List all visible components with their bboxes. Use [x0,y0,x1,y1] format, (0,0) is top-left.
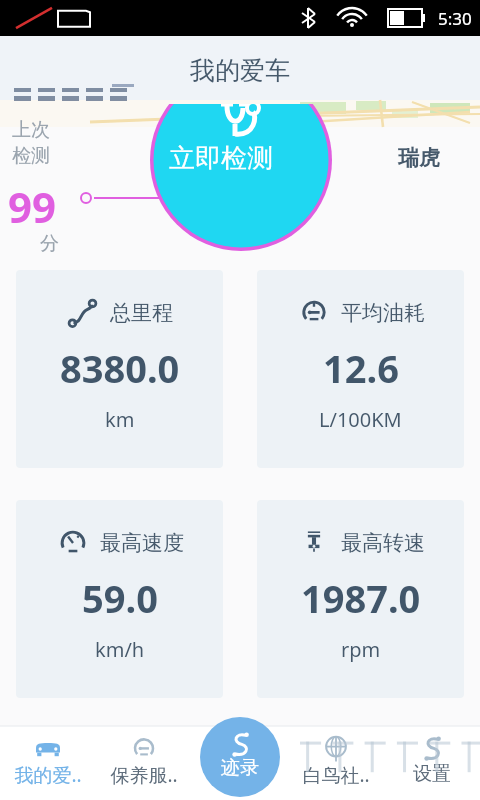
staticText: 最高速度 [100,530,184,556]
staticText: 平均油耗 [341,300,425,326]
staticText: 分 [40,232,59,256]
staticText: 12.6 [323,342,399,394]
button[interactable]: 我的爱.. [0,726,96,800]
staticText: 99 [8,178,57,235]
staticText: 保养服.. [110,762,178,788]
staticText: 我的爱.. [14,762,82,788]
staticText: L/100KM [319,406,402,433]
staticText: 白鸟社.. [302,762,370,788]
staticText: 最高转速 [341,530,425,556]
staticText: 59.0 [82,572,158,624]
button[interactable]: 平均油耗 [257,270,464,468]
button[interactable]: 最高转速 [257,500,464,698]
button[interactable]: 保养服.. [96,726,192,800]
staticText: 瑞虎 [398,145,440,171]
staticText: 5:30 [438,7,472,30]
button[interactable]: 迹录 [200,717,280,797]
staticText: 1987.0 [301,572,421,624]
staticText: 设置 [413,762,451,786]
staticText: km [105,406,135,433]
staticText: 检测 [12,144,50,168]
staticText: 总里程 [110,300,173,326]
staticText: 我的爱车 [190,55,290,86]
staticText: 立即检测 [169,142,273,175]
button[interactable]: 设置 [384,726,480,800]
button[interactable]: 总里程 [16,270,223,468]
staticText: 迹录 [221,756,259,780]
staticText: km/h [95,636,145,663]
staticText: rpm [341,636,381,663]
staticText: 8380.0 [60,342,180,394]
button[interactable]: 最高速度 [16,500,223,698]
button[interactable]: 白鸟社.. [288,726,384,800]
staticText: 上次 [12,118,50,142]
button[interactable]: 立即检测 [150,104,332,251]
